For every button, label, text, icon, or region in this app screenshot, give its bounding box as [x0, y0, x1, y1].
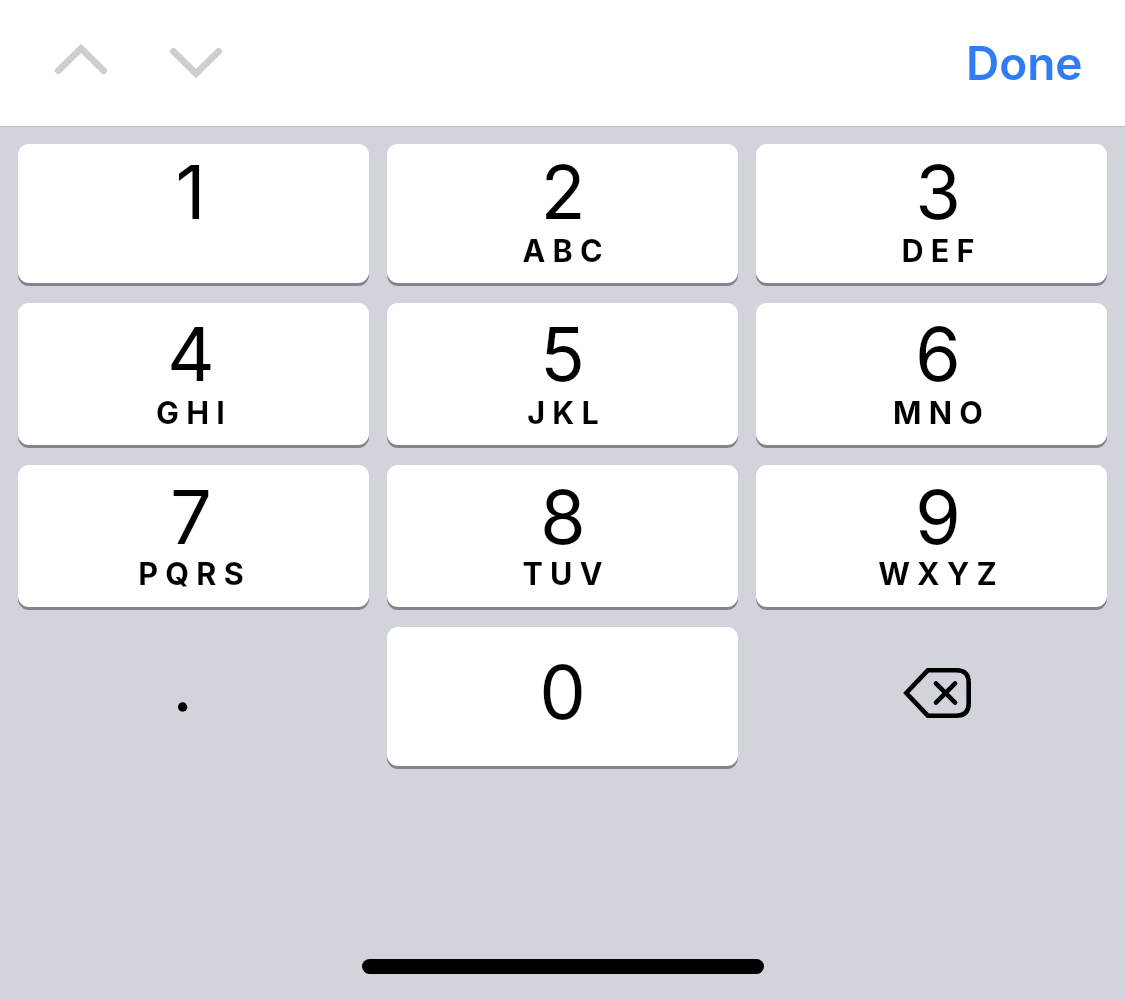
staticText: Done	[966, 35, 1083, 91]
staticText: M N O	[893, 394, 983, 431]
button[interactable]: 6 MNO	[756, 303, 1107, 445]
button[interactable]: 1	[18, 144, 369, 283]
staticText: G H I	[156, 394, 225, 431]
staticText: 7	[170, 472, 212, 562]
button[interactable]: 5 JKL	[387, 303, 738, 445]
staticText: 1	[175, 147, 206, 237]
button[interactable]: 0	[387, 627, 738, 766]
button[interactable]: 7 PQRS	[18, 465, 369, 607]
staticText: 3	[915, 147, 961, 237]
button[interactable]: Next field	[162, 31, 230, 91]
staticText: T U V	[522, 555, 603, 592]
staticText: D E F	[901, 232, 975, 269]
button[interactable]: Done	[946, 24, 1102, 102]
button[interactable]: Delete	[756, 627, 1107, 766]
button[interactable]: 9 WXYZ	[756, 465, 1107, 607]
staticText: P Q R S	[138, 555, 244, 592]
staticText: 5	[540, 309, 585, 399]
button[interactable]: 3 DEF	[756, 144, 1107, 283]
staticText: W X Y Z	[878, 555, 997, 592]
staticText: 0	[539, 647, 586, 737]
button[interactable]: 8 TUV	[387, 465, 738, 607]
staticText: 8	[540, 472, 586, 562]
staticText: J K L	[527, 394, 599, 431]
staticText: 4	[167, 309, 215, 399]
button[interactable]: Previous field	[47, 28, 115, 88]
button[interactable]: 4 GHI	[18, 303, 369, 445]
button[interactable]: 2 ABC	[387, 144, 738, 283]
button[interactable]: Period	[18, 627, 369, 766]
staticText: 6	[915, 309, 961, 399]
staticText: A B C	[522, 232, 603, 269]
staticText: 2	[540, 147, 586, 237]
staticText: 9	[915, 472, 961, 562]
